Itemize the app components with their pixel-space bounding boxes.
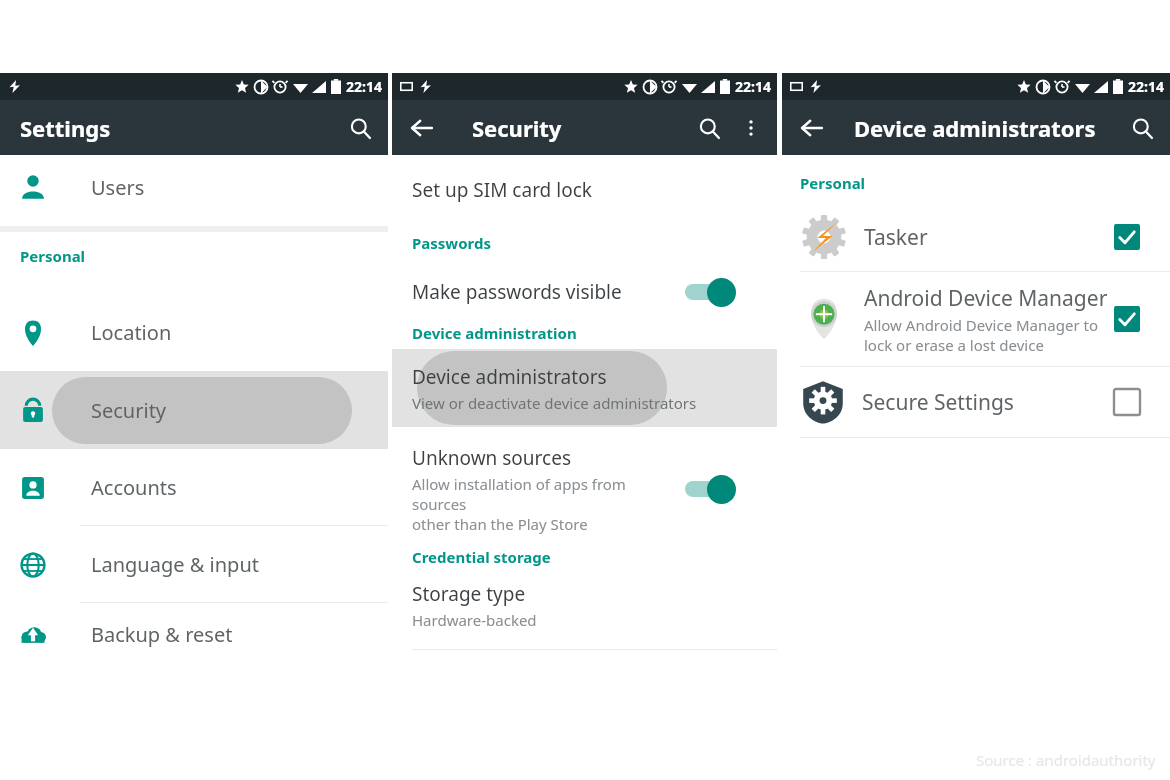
staticText: Make passwords visible — [412, 279, 622, 305]
button[interactable]: Security — [0, 371, 388, 449]
button[interactable]: Tasker — [782, 203, 1170, 271]
staticText: Location — [91, 319, 172, 346]
button[interactable]: Search — [338, 106, 382, 150]
button[interactable]: Accounts — [0, 449, 388, 526]
button[interactable]: Search — [1120, 106, 1164, 150]
staticText: Device administrators — [854, 113, 1096, 143]
button[interactable]: Storage type — [392, 581, 777, 641]
staticText: Users — [91, 174, 145, 201]
button[interactable]: More options — [731, 108, 771, 148]
staticText: Android Device Manager — [864, 284, 1108, 313]
staticText: 22:14 — [1128, 77, 1164, 96]
staticText: Personal — [800, 173, 866, 193]
button[interactable]: Toggle on — [685, 277, 737, 307]
staticText: Passwords — [412, 233, 491, 253]
button[interactable]: Back — [790, 106, 834, 150]
staticText: Storage type — [412, 581, 526, 607]
staticText: Security — [472, 113, 562, 143]
button[interactable]: Android Device Manager — [782, 272, 1170, 366]
staticText: Source : androidauthority — [976, 750, 1156, 770]
staticText: Credential storage — [412, 547, 551, 567]
staticText: Settings — [20, 113, 111, 143]
button[interactable]: Make passwords visible — [392, 267, 777, 317]
button[interactable]: Users — [0, 156, 388, 218]
staticText: Allow installation of apps from sources … — [412, 474, 667, 534]
button[interactable]: Secure Settings — [782, 367, 1170, 437]
button[interactable]: Back — [400, 106, 444, 150]
staticText: 22:14 — [346, 77, 382, 96]
staticText: Language & input — [91, 551, 259, 578]
button[interactable]: Search — [687, 106, 731, 150]
button[interactable]: Toggle on — [685, 474, 737, 504]
staticText: Secure Settings — [862, 388, 1014, 417]
button[interactable]: Unchecked — [1110, 385, 1144, 419]
staticText: Allow Android Device Manager to lock or … — [864, 315, 1098, 355]
staticText: Accounts — [91, 474, 177, 501]
button[interactable]: Device administrators — [392, 349, 777, 427]
staticText: Backup & reset — [91, 621, 233, 648]
staticText: 22:14 — [735, 77, 771, 96]
button[interactable]: Set up SIM card lock — [392, 177, 777, 213]
button[interactable]: Language & input — [0, 526, 388, 603]
staticText: Device administration — [412, 323, 577, 343]
staticText: Device administrators — [412, 364, 607, 390]
staticText: Security — [91, 397, 167, 424]
button[interactable]: Backup & reset — [0, 603, 388, 665]
staticText: Set up SIM card lock — [412, 177, 592, 203]
staticText: View or deactivate device administrators — [412, 393, 697, 413]
staticText: Tasker — [864, 223, 928, 252]
staticText: Personal — [20, 246, 86, 266]
button[interactable]: Unknown sources — [392, 443, 777, 535]
button[interactable]: Checked — [1110, 302, 1144, 336]
staticText: Unknown sources — [412, 445, 571, 471]
staticText: Hardware-backed — [412, 610, 537, 630]
button[interactable]: Checked — [1110, 220, 1144, 254]
button[interactable]: Location — [0, 294, 388, 371]
